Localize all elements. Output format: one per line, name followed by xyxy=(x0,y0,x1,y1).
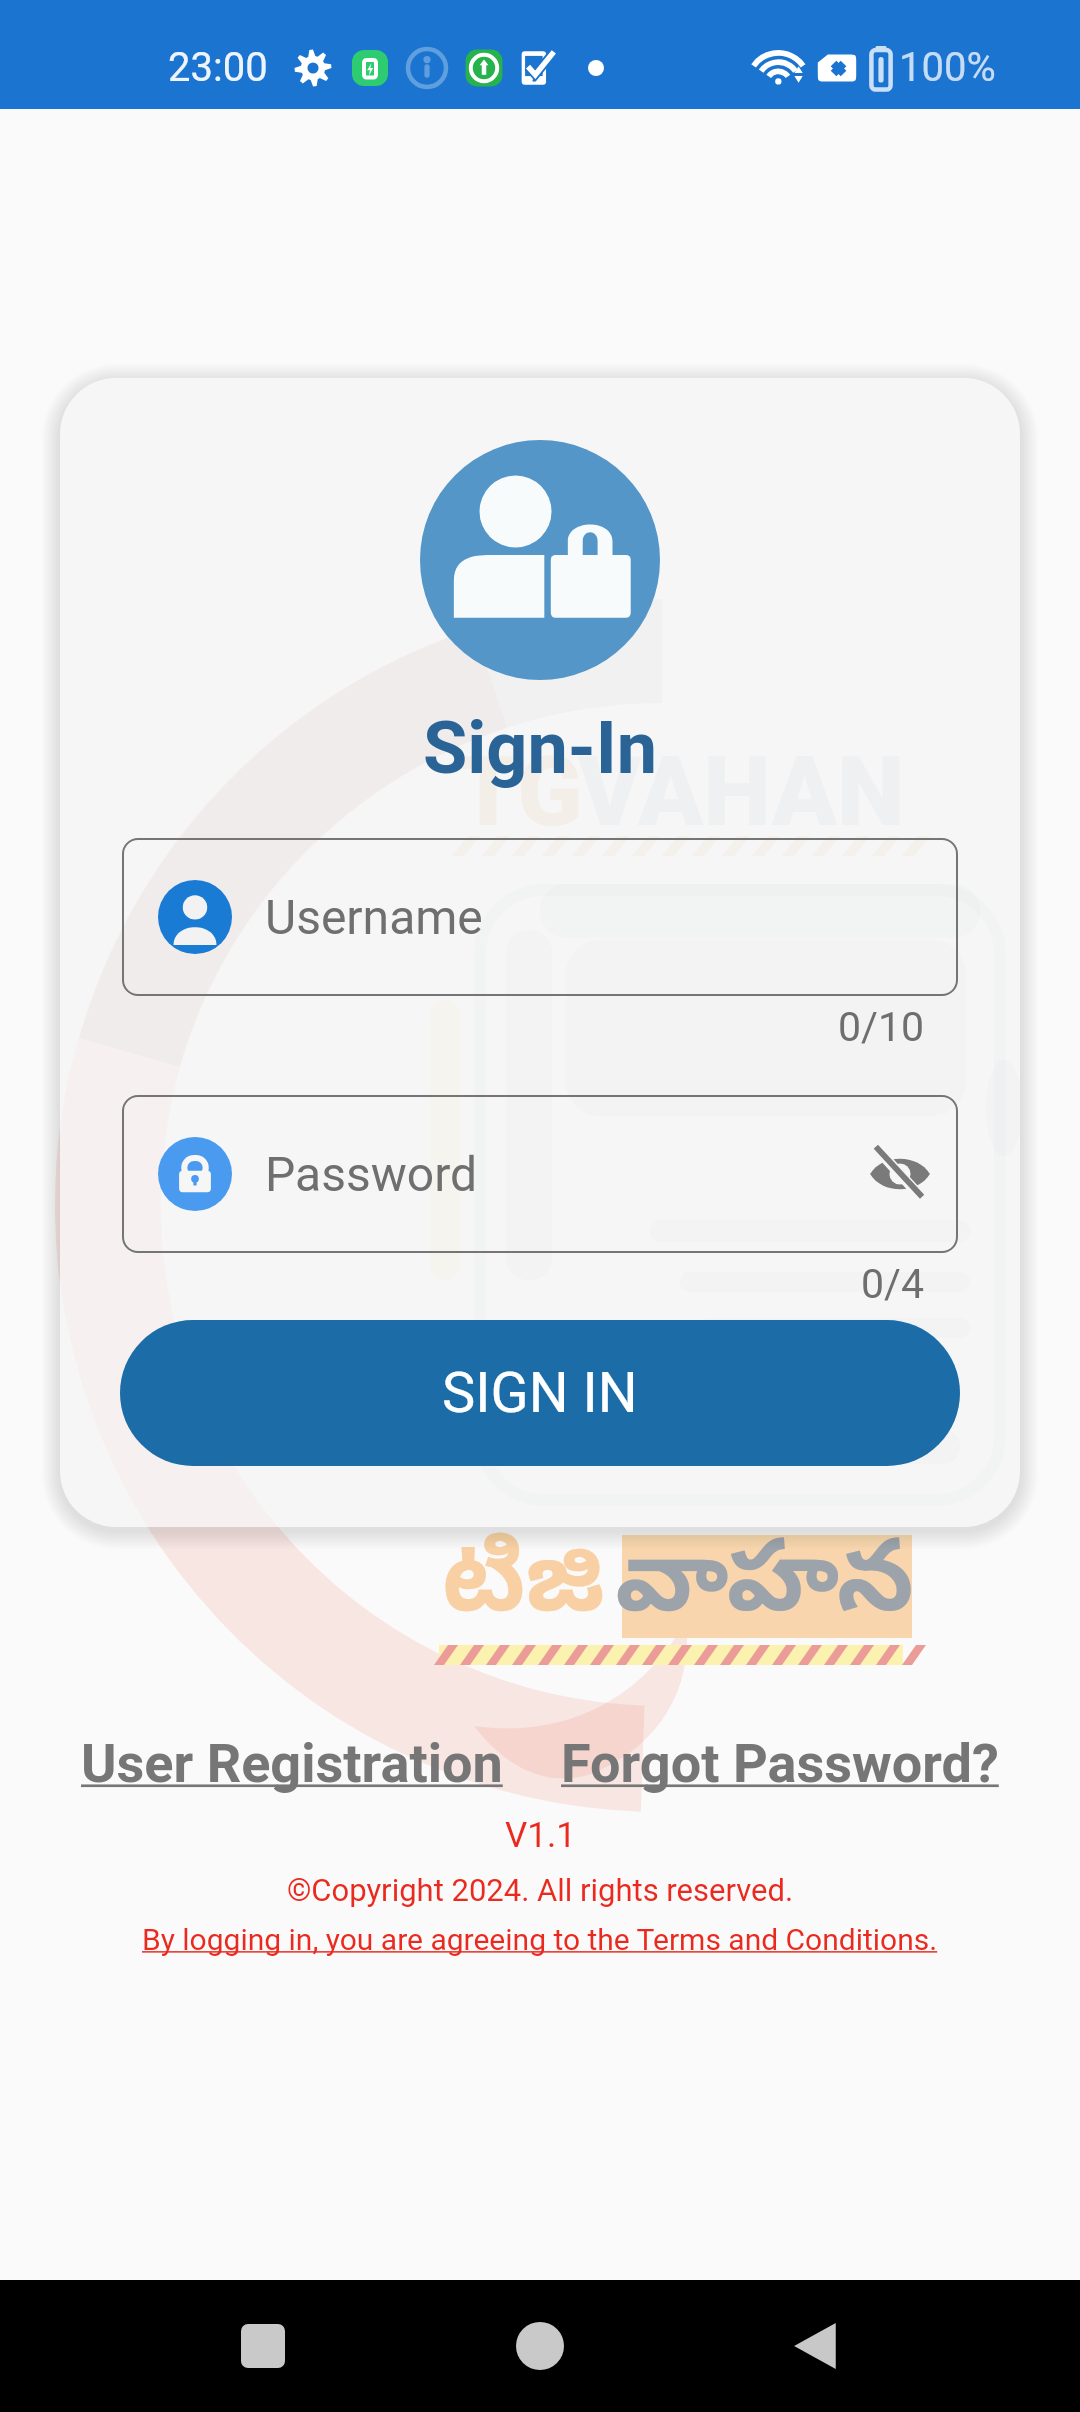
button[interactable]: Recents xyxy=(208,2291,318,2401)
button[interactable]: By logging in, you are agreeing to the T… xyxy=(142,1922,938,1957)
staticText: SIGN IN xyxy=(442,1360,638,1426)
staticText: VAHAN xyxy=(578,736,905,849)
staticText: టిజి xyxy=(442,1523,606,1658)
staticText: 23:00 xyxy=(168,44,268,91)
staticText: TG xyxy=(458,736,583,849)
button[interactable]: Password xyxy=(122,1095,958,1253)
staticText: Password xyxy=(265,1146,478,1202)
button[interactable]: Home xyxy=(485,2291,595,2401)
button[interactable]: Back xyxy=(762,2291,872,2401)
staticText: Sign-In xyxy=(423,706,658,790)
staticText: 0/10 xyxy=(838,1003,925,1051)
staticText: V1.1 xyxy=(505,1815,576,1856)
button[interactable]: SIGN IN xyxy=(120,1320,960,1466)
button[interactable]: Forgot Password? xyxy=(557,1728,1003,1799)
staticText: ©Copyright 2024. All rights reserved. xyxy=(287,1872,794,1908)
button[interactable]: Show password xyxy=(861,1135,939,1213)
staticText: Forgot Password? xyxy=(561,1732,999,1795)
staticText: వాహన xyxy=(615,1523,914,1658)
staticText: 0/4 xyxy=(861,1260,925,1308)
button[interactable]: User Registration xyxy=(77,1728,507,1799)
button[interactable]: Username xyxy=(122,838,958,996)
staticText: Username xyxy=(265,889,483,945)
staticText: By logging in, you are agreeing to the T… xyxy=(142,1922,938,1957)
staticText: User Registration xyxy=(81,1732,503,1795)
staticText: 100% xyxy=(899,44,996,91)
